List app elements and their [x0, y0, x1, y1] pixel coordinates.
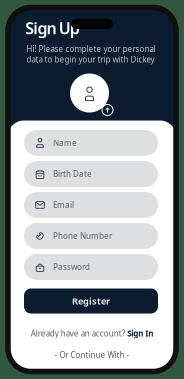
- staticText: Password: [53, 262, 90, 272]
- button[interactable]: Email: [24, 192, 158, 218]
- button[interactable]: Profile photo: [70, 73, 109, 112]
- staticText: Phone Number: [53, 231, 112, 241]
- staticText: Sign Up: [25, 17, 80, 39]
- button[interactable]: Register: [24, 288, 158, 313]
- button[interactable]: Birth Date: [24, 161, 158, 187]
- button[interactable]: Upload photo: [101, 104, 113, 116]
- staticText: - Or Continue With -: [54, 349, 129, 360]
- button[interactable]: Sign In: [127, 328, 153, 339]
- staticText: Email: [53, 200, 74, 210]
- staticText: Birth Date: [53, 169, 92, 179]
- staticText: Already have an account?: [31, 328, 125, 339]
- button[interactable]: Phone Number: [24, 223, 158, 249]
- button[interactable]: Name: [24, 130, 158, 156]
- staticText: Sign In: [127, 328, 153, 339]
- staticText: Name: [53, 138, 77, 148]
- staticText: Register: [72, 295, 110, 307]
- button[interactable]: Password: [24, 254, 158, 280]
- staticText: Hi! Please complete your personal data t…: [26, 43, 155, 65]
